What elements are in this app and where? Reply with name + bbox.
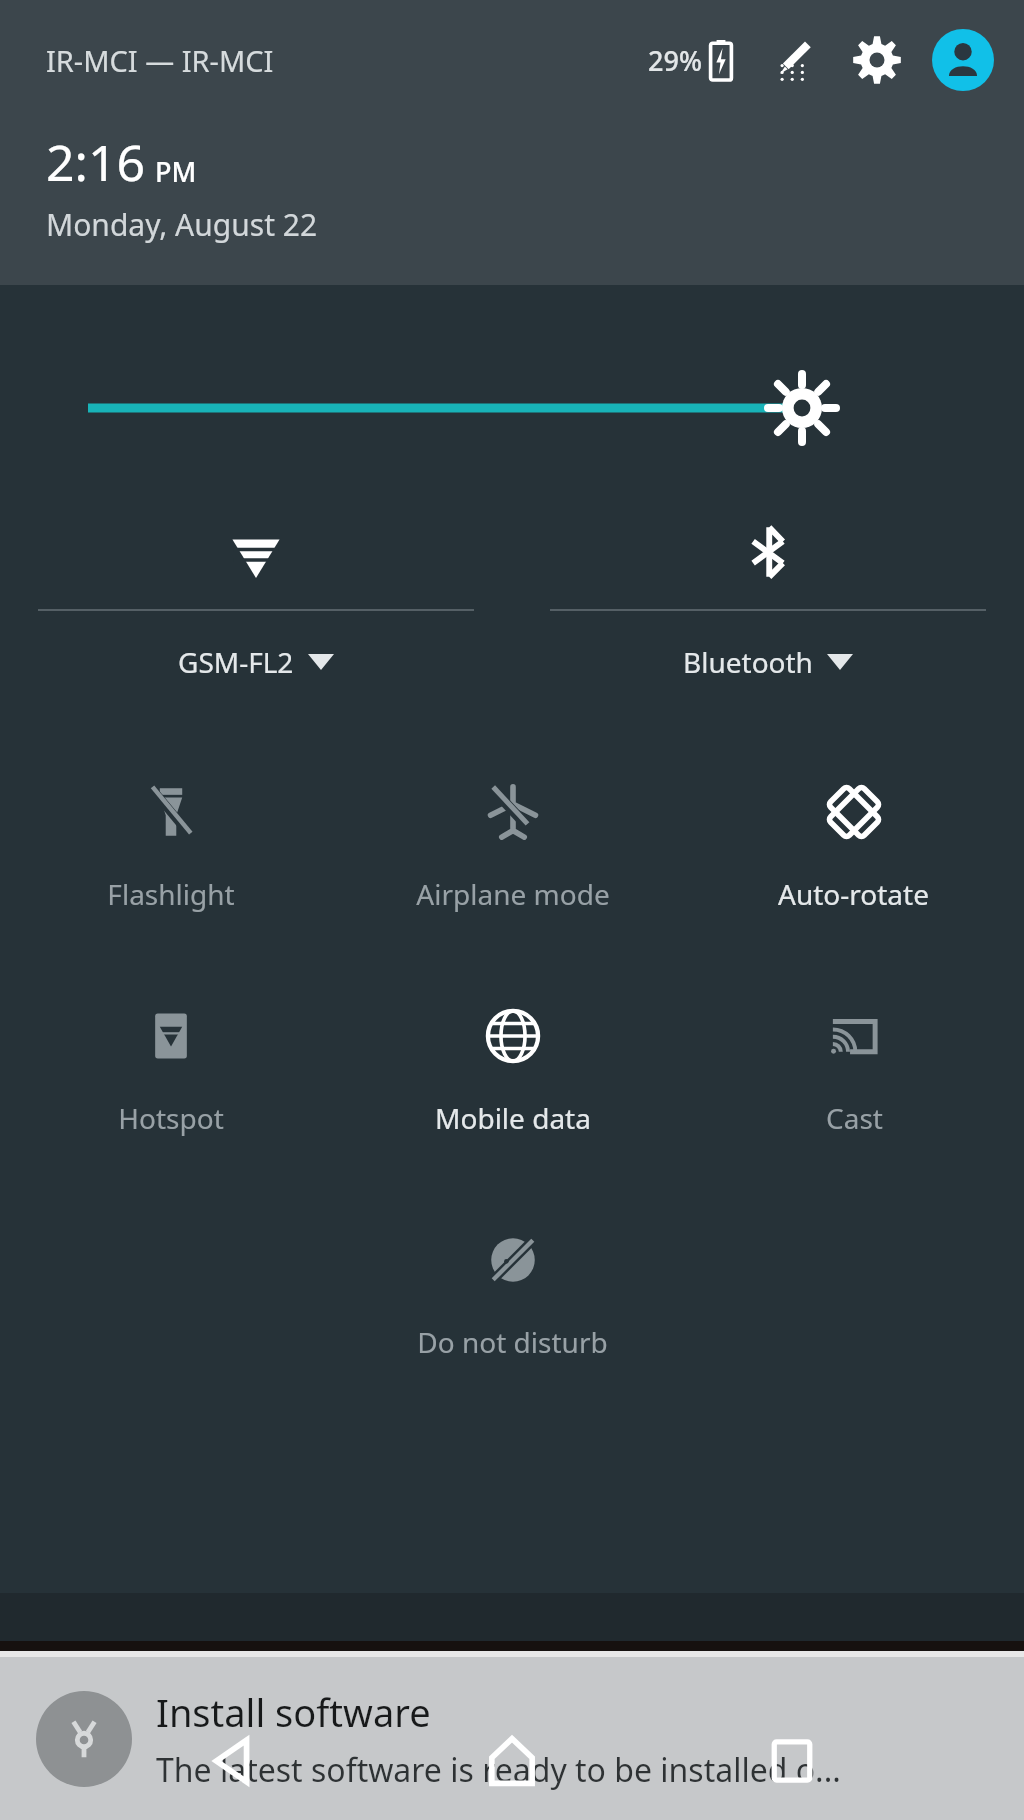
button[interactable]: Airplane mode [406,773,620,919]
button[interactable]: User profile [932,29,994,91]
button[interactable]: Install software [0,1657,1024,1820]
button[interactable]: Back [184,1713,280,1809]
staticText: 2:16 [46,128,146,196]
staticText: Cast [826,1099,883,1137]
button[interactable]: Flashlight [97,773,245,919]
button[interactable]: Edit quick settings [766,31,824,89]
staticText: Auto-rotate [778,875,929,913]
button[interactable]: Do not disturb [407,1221,618,1367]
staticText: Airplane mode [416,875,610,913]
staticText: Do not disturb [417,1323,608,1361]
button[interactable]: Home [464,1713,560,1809]
button[interactable]: Bluetooth [512,521,1024,681]
staticText: 29% [648,42,702,79]
staticText: Hotspot [118,1099,224,1137]
staticText: Mobile data [435,1099,591,1137]
staticText: GSM-FL2 [178,643,294,681]
staticText: Monday, August 22 [46,204,318,245]
button[interactable]: GSM-FL2 [0,521,512,681]
button[interactable]: Cast [811,997,897,1143]
button[interactable]: Mobile data [425,997,601,1143]
button[interactable]: Settings [848,31,906,89]
button[interactable]: Auto-rotate [768,773,939,919]
button[interactable]: Recents [744,1713,840,1809]
staticText: The latest software is ready to be insta… [156,1748,841,1792]
staticText: Install software [156,1686,431,1738]
button[interactable]: Brightness [0,373,1024,443]
staticText: Flashlight [107,875,235,913]
staticText: Bluetooth [683,643,813,681]
staticText: PM [155,153,197,190]
staticText: IR-MCI — IR-MCI [46,41,274,80]
button[interactable]: Hotspot [108,997,234,1143]
